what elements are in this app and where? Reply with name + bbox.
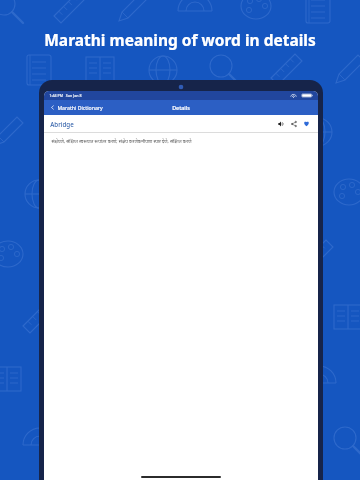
staticText: Abridge (50, 120, 74, 128)
button[interactable]: Pronounce (275, 118, 286, 129)
button[interactable]: Favorite (301, 118, 312, 129)
button[interactable]: Share (288, 118, 299, 129)
button[interactable]: Marathi Dictionary (48, 102, 105, 113)
staticText: Details (172, 104, 190, 111)
staticText: Marathi meaning of word in details (8, 29, 352, 50)
staticText: 1:44 PM Sun Jan 8 (49, 93, 82, 98)
staticText: संक्षेपणे, संक्षिप्त स्वरूपात रूपांतर कर… (51, 138, 192, 144)
staticText: Marathi Dictionary (57, 104, 103, 111)
